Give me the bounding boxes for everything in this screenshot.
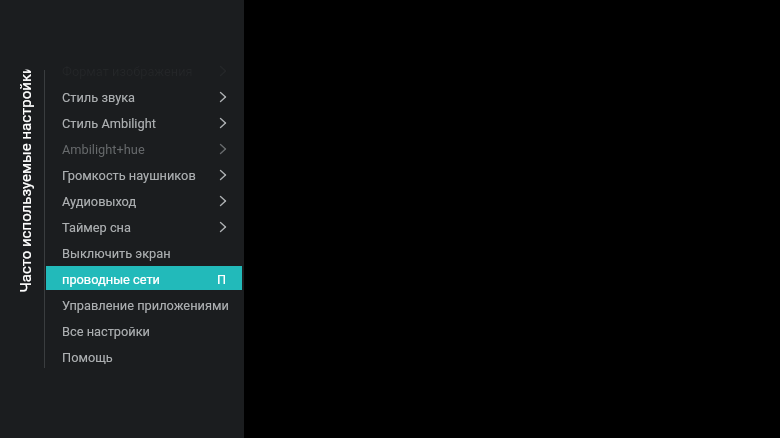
staticText: Все настройки [62,324,150,339]
staticText: Управление приложениями [62,298,229,313]
button[interactable]: Аудиовыход [46,188,242,212]
staticText: Аудиовыход [62,194,137,209]
button[interactable]: Выключить экран [46,240,242,264]
staticText: Выключить экран [62,246,171,261]
button[interactable]: Помощь [46,344,242,368]
button[interactable]: Часто используемые настройки [9,70,40,293]
staticText: Громкость наушников [62,168,196,183]
button[interactable]: проводные сети [46,266,242,290]
staticText: Помощь [62,350,113,365]
staticText: Стиль звука [62,90,136,105]
button[interactable]: Управление приложениями [46,292,242,316]
button[interactable]: Ambilight+hue [46,136,242,160]
staticText: П [217,272,227,287]
button[interactable]: Все настройки [46,318,242,342]
staticText: проводные сети [62,272,160,287]
button[interactable]: Таймер сна [46,214,242,238]
button[interactable]: Громкость наушников [46,162,242,186]
button[interactable]: Стиль звука [46,84,242,108]
staticText: Часто используемые настройки [16,69,34,292]
staticText: Таймер сна [62,220,131,235]
button[interactable]: Стиль Ambilight [46,110,242,134]
staticText: Ambilight+hue [62,142,145,157]
staticText: Стиль Ambilight [62,116,156,131]
